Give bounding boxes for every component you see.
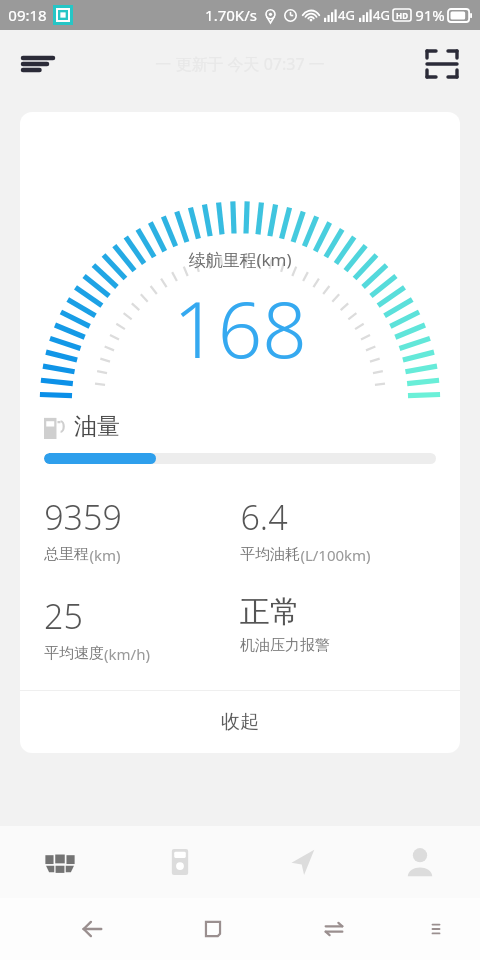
staticText: 1.70K/s: [205, 5, 257, 25]
staticText: 收起: [221, 710, 259, 734]
staticText: 4G: [373, 6, 390, 24]
staticText: 总里程: [44, 545, 89, 564]
button[interactable]: Scan: [418, 40, 466, 88]
button[interactable]: Device: [120, 826, 240, 898]
staticText: 168: [173, 275, 307, 381]
button[interactable]: Switch: [312, 907, 356, 951]
button[interactable]: Profile: [360, 826, 480, 898]
staticText: 平均油耗: [240, 545, 300, 564]
button[interactable]: Menu: [14, 40, 62, 88]
button[interactable]: 收起: [20, 691, 460, 753]
staticText: 续航里程(km): [188, 248, 292, 271]
staticText: 一 更新于 今天 07:37 一: [155, 53, 325, 75]
staticText: 平均速度: [44, 644, 104, 663]
staticText: 09:18: [8, 5, 47, 25]
button[interactable]: More: [414, 907, 458, 951]
staticText: 9359: [44, 494, 122, 540]
staticText: 25: [44, 593, 83, 639]
staticText: (km): [89, 545, 121, 565]
staticText: 油量: [74, 412, 120, 441]
staticText: (L/100km): [300, 545, 371, 565]
staticText: 4G: [338, 6, 355, 24]
button[interactable]: Navigate: [240, 826, 360, 898]
staticText: (km/h): [104, 644, 150, 664]
button[interactable]: Dashboard: [0, 826, 120, 898]
button[interactable]: Home: [191, 907, 235, 951]
staticText: 91%: [415, 5, 445, 25]
button[interactable]: Back: [70, 907, 114, 951]
staticText: 机油压力报警: [240, 636, 330, 655]
staticText: HD: [396, 10, 408, 21]
staticText: 正常: [240, 593, 300, 631]
staticText: 6.4: [240, 494, 288, 540]
